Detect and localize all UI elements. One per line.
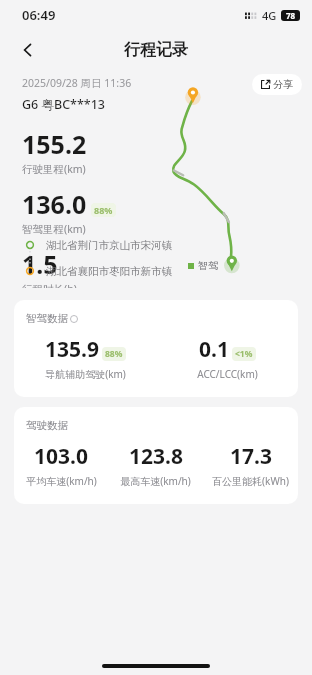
staticText: 0.1 [199, 335, 229, 364]
staticText: 1.5 [22, 247, 58, 281]
button[interactable]: 智驾数据 [14, 300, 298, 397]
staticText: 行程记录 [124, 40, 188, 60]
staticText: <1% [235, 348, 253, 360]
staticText: 湖北省荆门市京山市宋河镇 [46, 239, 172, 252]
staticText: G6 粤BC***13 [22, 96, 105, 113]
staticText: 导航辅助驾驶(km) [45, 367, 126, 381]
button[interactable]: 驾驶数据 [14, 407, 298, 504]
staticText: 06:49 [22, 6, 56, 24]
staticText: 智驾 [198, 259, 218, 272]
staticText: 78 [286, 10, 296, 21]
staticText: 智驾里程(km) [22, 222, 86, 236]
staticText: 88% [105, 348, 123, 360]
staticText: 103.0 [34, 442, 88, 471]
staticText: 驾驶数据 [26, 419, 68, 432]
staticText: 123.8 [129, 442, 183, 471]
staticText: 4G [262, 8, 277, 23]
staticText: 湖北省襄阳市枣阳市新市镇 [46, 265, 172, 278]
staticText: 平均车速(km/h) [26, 474, 97, 488]
staticText: 最高车速(km/h) [120, 474, 191, 488]
staticText: 2025/09/28 周日 11:36 [22, 76, 132, 90]
staticText: 135.9 [45, 335, 99, 364]
staticText: 行程时长(h) [22, 282, 77, 288]
staticText: 行驶里程(km) [22, 162, 86, 176]
button[interactable]: Back [10, 32, 46, 68]
staticText: 136.0 [22, 187, 87, 221]
staticText: 88% [94, 204, 113, 216]
staticText: 17.3 [230, 442, 272, 471]
staticText: 155.2 [22, 127, 87, 161]
staticText: 智驾数据 [26, 312, 68, 325]
staticText: ACC/LCC(km) [197, 367, 258, 381]
staticText: 百公里能耗(kWh) [212, 474, 289, 488]
button[interactable]: 分享 [252, 74, 302, 95]
staticText: 分享 [273, 78, 293, 91]
